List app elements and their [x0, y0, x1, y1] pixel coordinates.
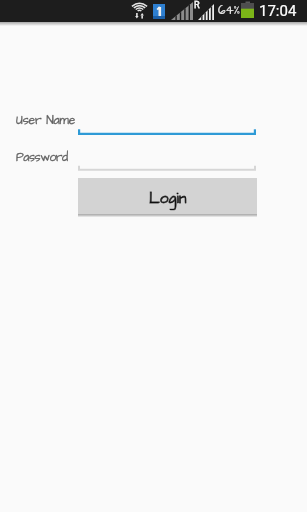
staticText: 17:04: [259, 2, 297, 20]
staticText: User Name: [16, 112, 76, 129]
staticText: User Name: [16, 112, 76, 129]
button[interactable]: Password input: [78, 151, 256, 171]
staticText: Login: [149, 188, 187, 210]
button[interactable]: User Name input: [78, 115, 256, 135]
button[interactable]: Login: [78, 178, 257, 214]
staticText: Password: [16, 149, 68, 166]
staticText: R: [194, 0, 200, 11]
staticText: Login: [149, 188, 187, 210]
staticText: 64%: [218, 2, 240, 19]
staticText: Password: [16, 149, 68, 166]
